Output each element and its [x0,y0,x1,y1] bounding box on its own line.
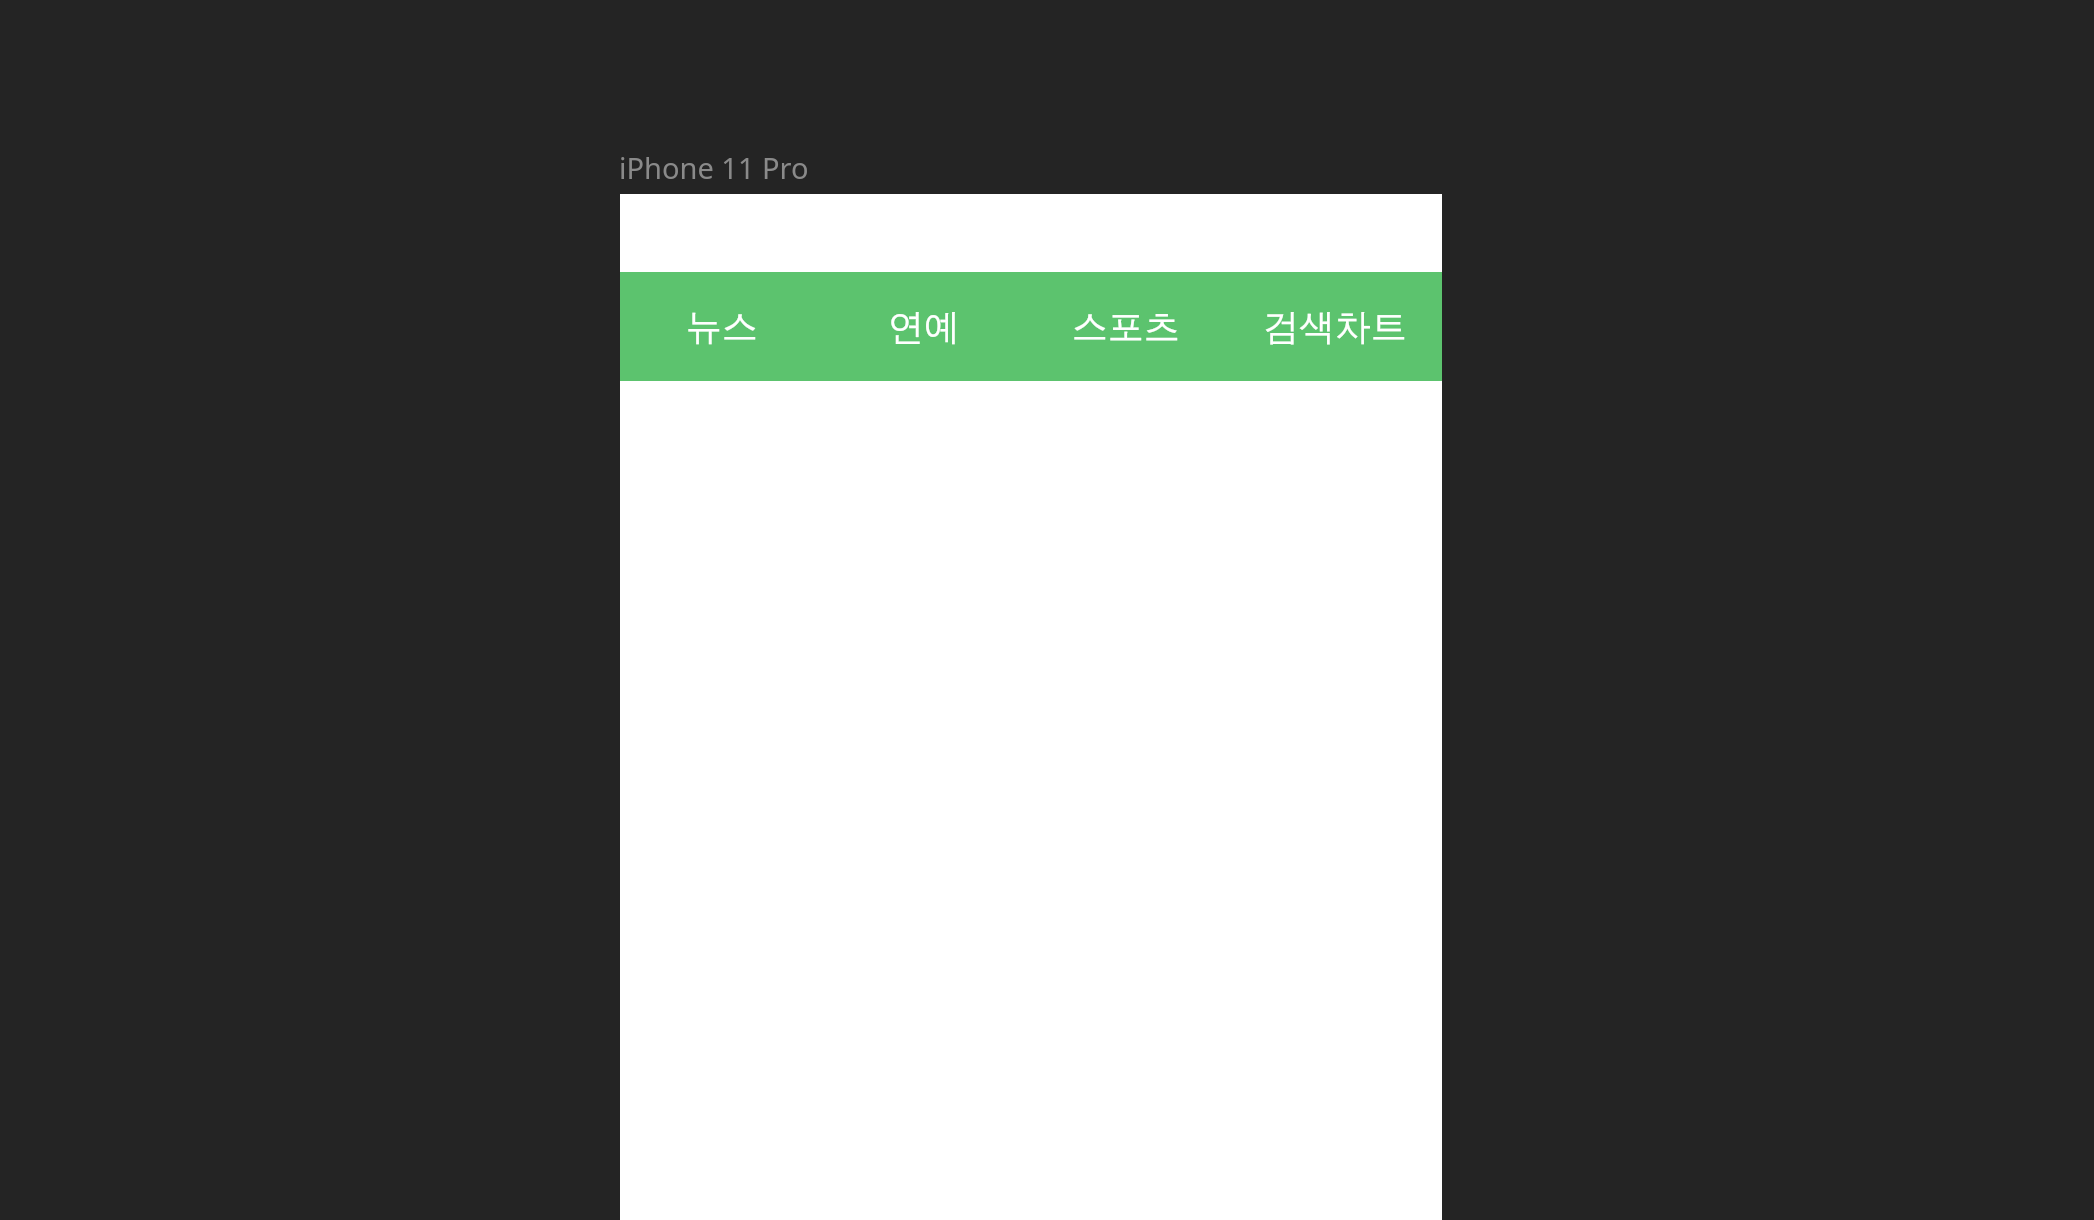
staticText: 검색차트 [1263,304,1407,349]
staticText: 뉴스 [686,304,758,349]
staticText: 스포츠 [1072,304,1180,349]
button[interactable]: 연예 [823,272,1025,381]
staticText: iPhone 11 Pro [619,148,809,187]
staticText: 연예 [888,304,960,349]
button[interactable]: 뉴스 [620,272,823,381]
button[interactable]: 검색차트 [1227,272,1442,381]
button[interactable]: 스포츠 [1025,272,1227,381]
